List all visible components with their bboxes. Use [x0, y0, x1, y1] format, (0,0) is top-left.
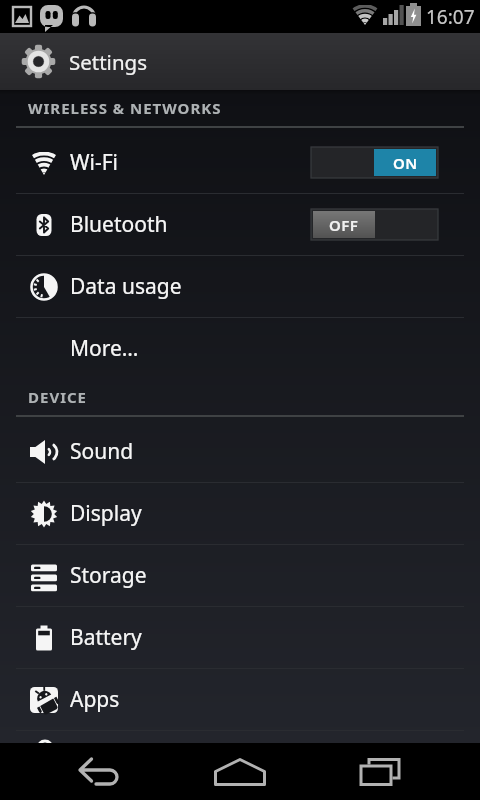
staticText: ON — [393, 153, 418, 173]
staticText: 16:07 — [426, 4, 475, 30]
staticText: Wi-Fi — [70, 148, 119, 177]
button[interactable]: More… — [0, 318, 480, 379]
staticText: Battery — [70, 623, 142, 652]
button[interactable]: Data usage — [0, 256, 480, 317]
button[interactable]: OFF — [311, 209, 438, 240]
staticText: Data usage — [70, 272, 182, 301]
button[interactable]: Storage — [0, 545, 480, 606]
button[interactable]: Settings — [0, 33, 480, 90]
staticText: Display — [70, 499, 142, 528]
staticText: Sound — [70, 437, 134, 466]
button[interactable]: Sound — [0, 421, 480, 482]
button[interactable] — [200, 743, 280, 800]
staticText: OFF — [329, 215, 359, 235]
staticText: DEVICE — [28, 387, 87, 407]
staticText: WIRELESS & NETWORKS — [28, 98, 222, 118]
button[interactable]: Bluetooth — [0, 194, 480, 255]
staticText: Bluetooth — [70, 210, 168, 239]
staticText: Settings — [69, 48, 148, 76]
staticText: More… — [70, 334, 139, 363]
button[interactable]: ON — [311, 147, 438, 178]
button[interactable]: Display — [0, 483, 480, 544]
button[interactable] — [60, 743, 140, 800]
button[interactable]: Battery — [0, 607, 480, 668]
button[interactable] — [340, 743, 420, 800]
button[interactable]: Wi-Fi — [0, 132, 480, 193]
button[interactable]: Apps — [0, 669, 480, 730]
staticText: Storage — [70, 561, 147, 590]
staticText: Apps — [70, 685, 120, 714]
